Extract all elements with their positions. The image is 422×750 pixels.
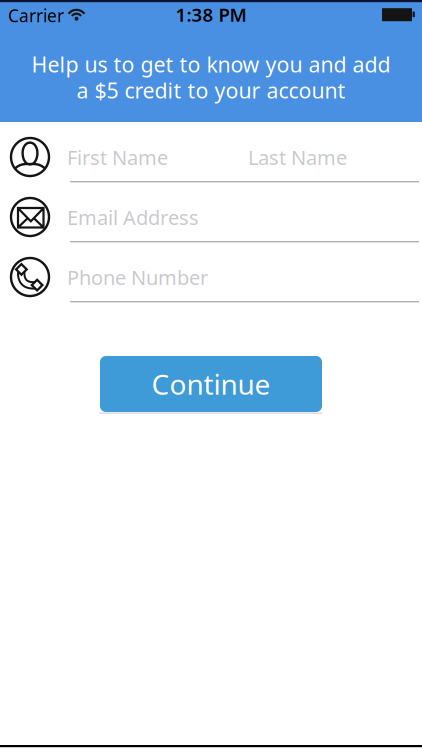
staticText: Help us to get to know you and add [31,50,390,78]
staticText: Last Name [248,144,347,171]
staticText: 1:38 PM [175,2,246,27]
staticText: a $5 credit to your account [76,76,345,104]
staticText: Email Address [67,204,199,231]
staticText: First Name [67,144,168,171]
staticText: Phone Number [67,264,208,291]
staticText: Continue [151,365,270,403]
staticText: Carrier [8,4,64,27]
